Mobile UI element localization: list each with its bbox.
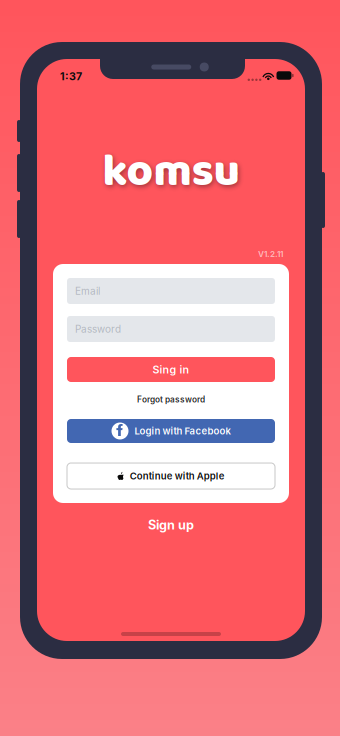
staticText: Login with Facebook xyxy=(134,425,230,437)
button[interactable]: Sign up xyxy=(37,512,305,538)
button[interactable]: Login with Facebook xyxy=(67,419,275,443)
staticText: 1:37 xyxy=(60,70,82,83)
staticText: Sing in xyxy=(152,363,189,376)
button[interactable]: Forgot password xyxy=(67,393,275,406)
staticText: komsu xyxy=(102,136,239,208)
staticText: Sign up xyxy=(148,517,194,533)
button[interactable]: Continue with Apple xyxy=(67,463,275,489)
staticText: V1.2.11 xyxy=(258,249,283,259)
button[interactable]: Sing in xyxy=(67,357,275,382)
staticText: Password xyxy=(75,323,121,335)
button[interactable]: Email xyxy=(67,278,275,304)
staticText: Forgot password xyxy=(137,394,205,404)
button[interactable]: Password xyxy=(67,316,275,342)
staticText: Continue with Apple xyxy=(130,470,225,482)
staticText: Email xyxy=(75,285,100,297)
